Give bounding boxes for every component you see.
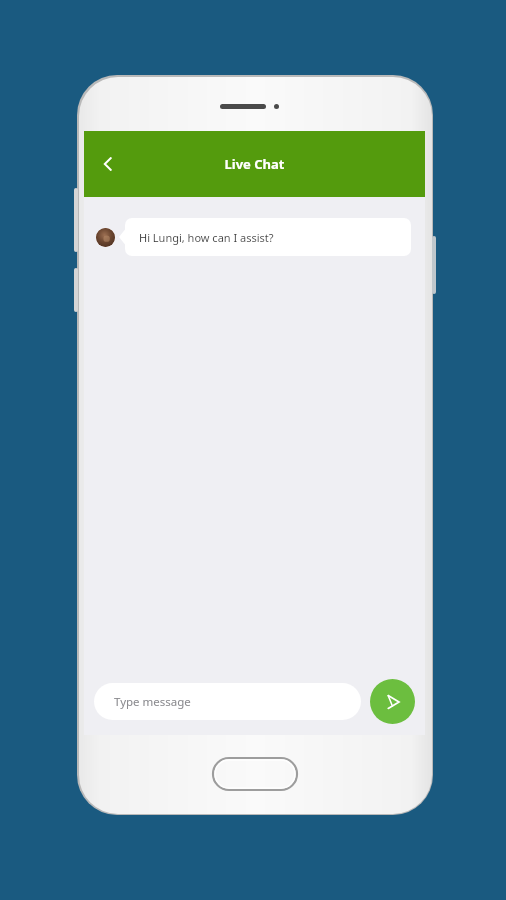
staticText: Hi Lungi, how can I assist? [139,230,274,245]
button[interactable]: Home [212,757,298,791]
staticText: Live Chat [84,155,425,173]
button[interactable]: Hi Lungi, how can I assist? [125,218,411,256]
button[interactable]: Back [92,148,124,180]
button[interactable]: Type message [94,683,361,720]
button[interactable]: Send [370,679,415,724]
staticText: Type message [114,694,191,710]
